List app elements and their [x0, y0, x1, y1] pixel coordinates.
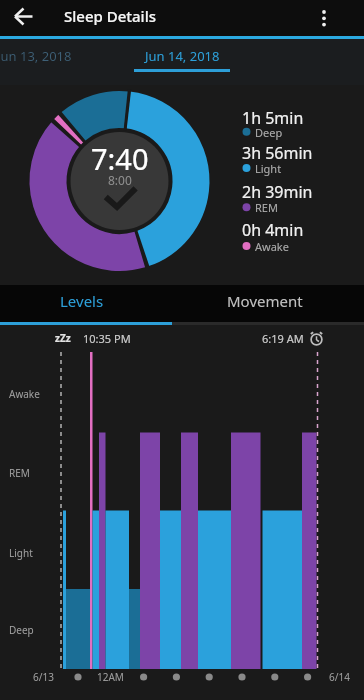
- staticText: Levels: [60, 291, 104, 311]
- staticText: REM: [9, 466, 30, 480]
- staticText: 6:19 AM: [262, 331, 304, 346]
- staticText: Light: [9, 546, 33, 560]
- staticText: Movement: [227, 291, 303, 311]
- button[interactable]: [8, 4, 42, 32]
- staticText: Deep: [255, 125, 283, 140]
- staticText: Sleep Details: [64, 6, 157, 26]
- staticText: Awake: [9, 387, 40, 401]
- staticText: 1h 5min: [242, 107, 304, 129]
- staticText: 6/13: [33, 670, 54, 684]
- staticText: zZz: [55, 331, 71, 345]
- staticText: Jun 14, 2018: [145, 47, 220, 65]
- button[interactable]: [310, 2, 340, 32]
- staticText: 8:00: [108, 172, 132, 188]
- button[interactable]: Movement: [182, 285, 364, 322]
- staticText: 7:40: [91, 139, 149, 178]
- staticText: Jun 13, 2018: [0, 47, 72, 65]
- button[interactable]: Levels: [0, 285, 182, 322]
- staticText: 12AM: [97, 670, 124, 684]
- staticText: 2h 39min: [242, 181, 313, 203]
- staticText: 10:35 PM: [83, 331, 131, 346]
- button[interactable]: Jun 13, 2018: [0, 47, 94, 65]
- staticText: 6/14: [329, 670, 350, 684]
- staticText: Deep: [9, 623, 34, 637]
- staticText: 3h 56min: [242, 142, 313, 164]
- staticText: Light: [255, 161, 282, 176]
- staticText: 0h 4min: [242, 219, 304, 241]
- button[interactable]: Jun 14, 2018: [122, 47, 242, 65]
- staticText: Awake: [255, 239, 289, 254]
- staticText: REM: [255, 200, 278, 215]
